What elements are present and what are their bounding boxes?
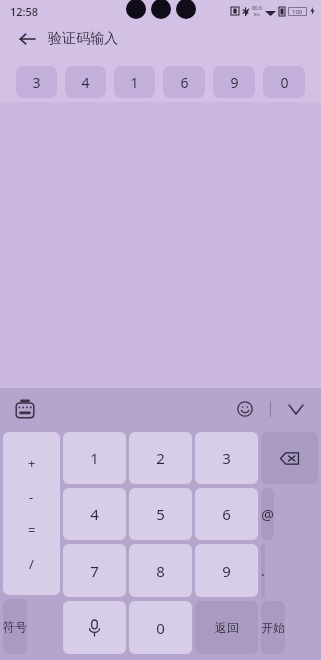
staticText: 验证码输入	[48, 30, 118, 48]
button[interactable]: Voice input	[63, 601, 126, 654]
staticText: B/s	[254, 12, 261, 17]
button[interactable]: 1	[114, 66, 155, 98]
button[interactable]: 2	[129, 432, 192, 484]
staticText: +	[28, 454, 36, 472]
staticText: 7	[90, 561, 99, 581]
button[interactable]: @	[261, 488, 274, 540]
staticText: 返回	[215, 620, 239, 635]
staticText: 100	[292, 8, 303, 16]
button[interactable]: 7	[63, 544, 126, 597]
staticText: 9	[230, 73, 239, 92]
staticText: 8	[156, 561, 165, 581]
staticText: =	[28, 521, 36, 539]
staticText: 2	[156, 448, 165, 468]
button[interactable]: 3	[16, 66, 57, 98]
staticText: 1	[90, 448, 99, 468]
button[interactable]: 9	[195, 544, 258, 597]
button[interactable]: Emoji	[230, 394, 260, 424]
staticText: 9	[222, 561, 231, 581]
staticText: 5	[156, 504, 165, 524]
button[interactable]: .	[261, 544, 265, 597]
staticText: 开始	[261, 620, 285, 635]
staticText: 12:58	[10, 4, 39, 19]
staticText: 3	[32, 73, 41, 92]
staticText: -	[29, 488, 34, 506]
staticText: 0	[280, 73, 289, 92]
button[interactable]: 0	[129, 601, 192, 654]
staticText: @	[261, 505, 274, 524]
button[interactable]: 符号	[3, 599, 27, 654]
staticText: 6	[222, 504, 231, 524]
staticText: 符号	[3, 619, 27, 634]
button[interactable]: +	[3, 432, 60, 595]
button[interactable]: 9	[213, 66, 255, 98]
staticText: 1	[130, 73, 139, 92]
button[interactable]: Back	[14, 26, 40, 52]
button[interactable]: Hide keyboard	[281, 394, 311, 424]
button[interactable]: 3	[195, 432, 258, 484]
staticText: /	[29, 555, 34, 573]
staticText: .	[261, 561, 265, 580]
button[interactable]: 返回	[195, 601, 258, 654]
staticText: 6	[180, 73, 189, 92]
button[interactable]: 6	[195, 488, 258, 540]
button[interactable]: Backspace	[261, 432, 318, 484]
button[interactable]: 开始	[261, 601, 285, 654]
button[interactable]: 4	[65, 66, 106, 98]
button[interactable]: 6	[163, 66, 205, 98]
staticText: 0	[156, 618, 165, 638]
button[interactable]: 8	[129, 544, 192, 597]
staticText: 3	[222, 448, 231, 468]
staticText: 80.6	[252, 5, 262, 12]
button[interactable]: 5	[129, 488, 192, 540]
staticText: 4	[81, 73, 90, 92]
button[interactable]: 1	[63, 432, 126, 484]
staticText: 4	[90, 504, 99, 524]
button[interactable]: 0	[263, 66, 305, 98]
button[interactable]: AI keyboard	[10, 394, 40, 424]
button[interactable]: 4	[63, 488, 126, 540]
